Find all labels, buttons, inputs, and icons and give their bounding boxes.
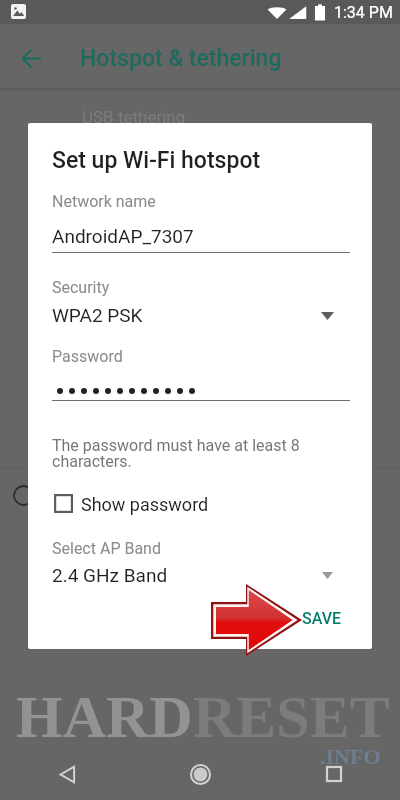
staticText: SAVE — [302, 609, 342, 628]
staticText: RESET — [193, 684, 390, 750]
staticText: HARD — [16, 684, 193, 750]
staticText: AndroidAP_7307 — [52, 225, 194, 247]
button[interactable]: Back — [0, 748, 134, 800]
staticText: 2.4 GHz Band — [52, 564, 168, 586]
staticText: Set up Wi-Fi hotspot — [52, 147, 261, 174]
staticText: Select AP Band — [52, 539, 161, 558]
staticText: Password — [52, 347, 123, 366]
staticText: 1:34 PM — [334, 3, 393, 22]
staticText: Show password — [81, 494, 209, 515]
button[interactable]: Home — [134, 748, 267, 800]
staticText: Security — [52, 278, 110, 297]
staticText: WPA2 PSK — [52, 304, 143, 326]
button[interactable]: SAVE — [290, 597, 350, 637]
staticText: Network name — [52, 192, 156, 211]
button[interactable]: Show password — [52, 487, 242, 519]
staticText: Hotspot & tethering — [80, 45, 282, 72]
button[interactable]: Recent apps — [267, 748, 400, 800]
button[interactable]: Navigate up — [9, 36, 53, 80]
staticText: USB tethering — [82, 107, 186, 127]
staticText: The password must have at least 8 charac… — [52, 436, 320, 471]
staticText: .INFO — [320, 744, 381, 768]
